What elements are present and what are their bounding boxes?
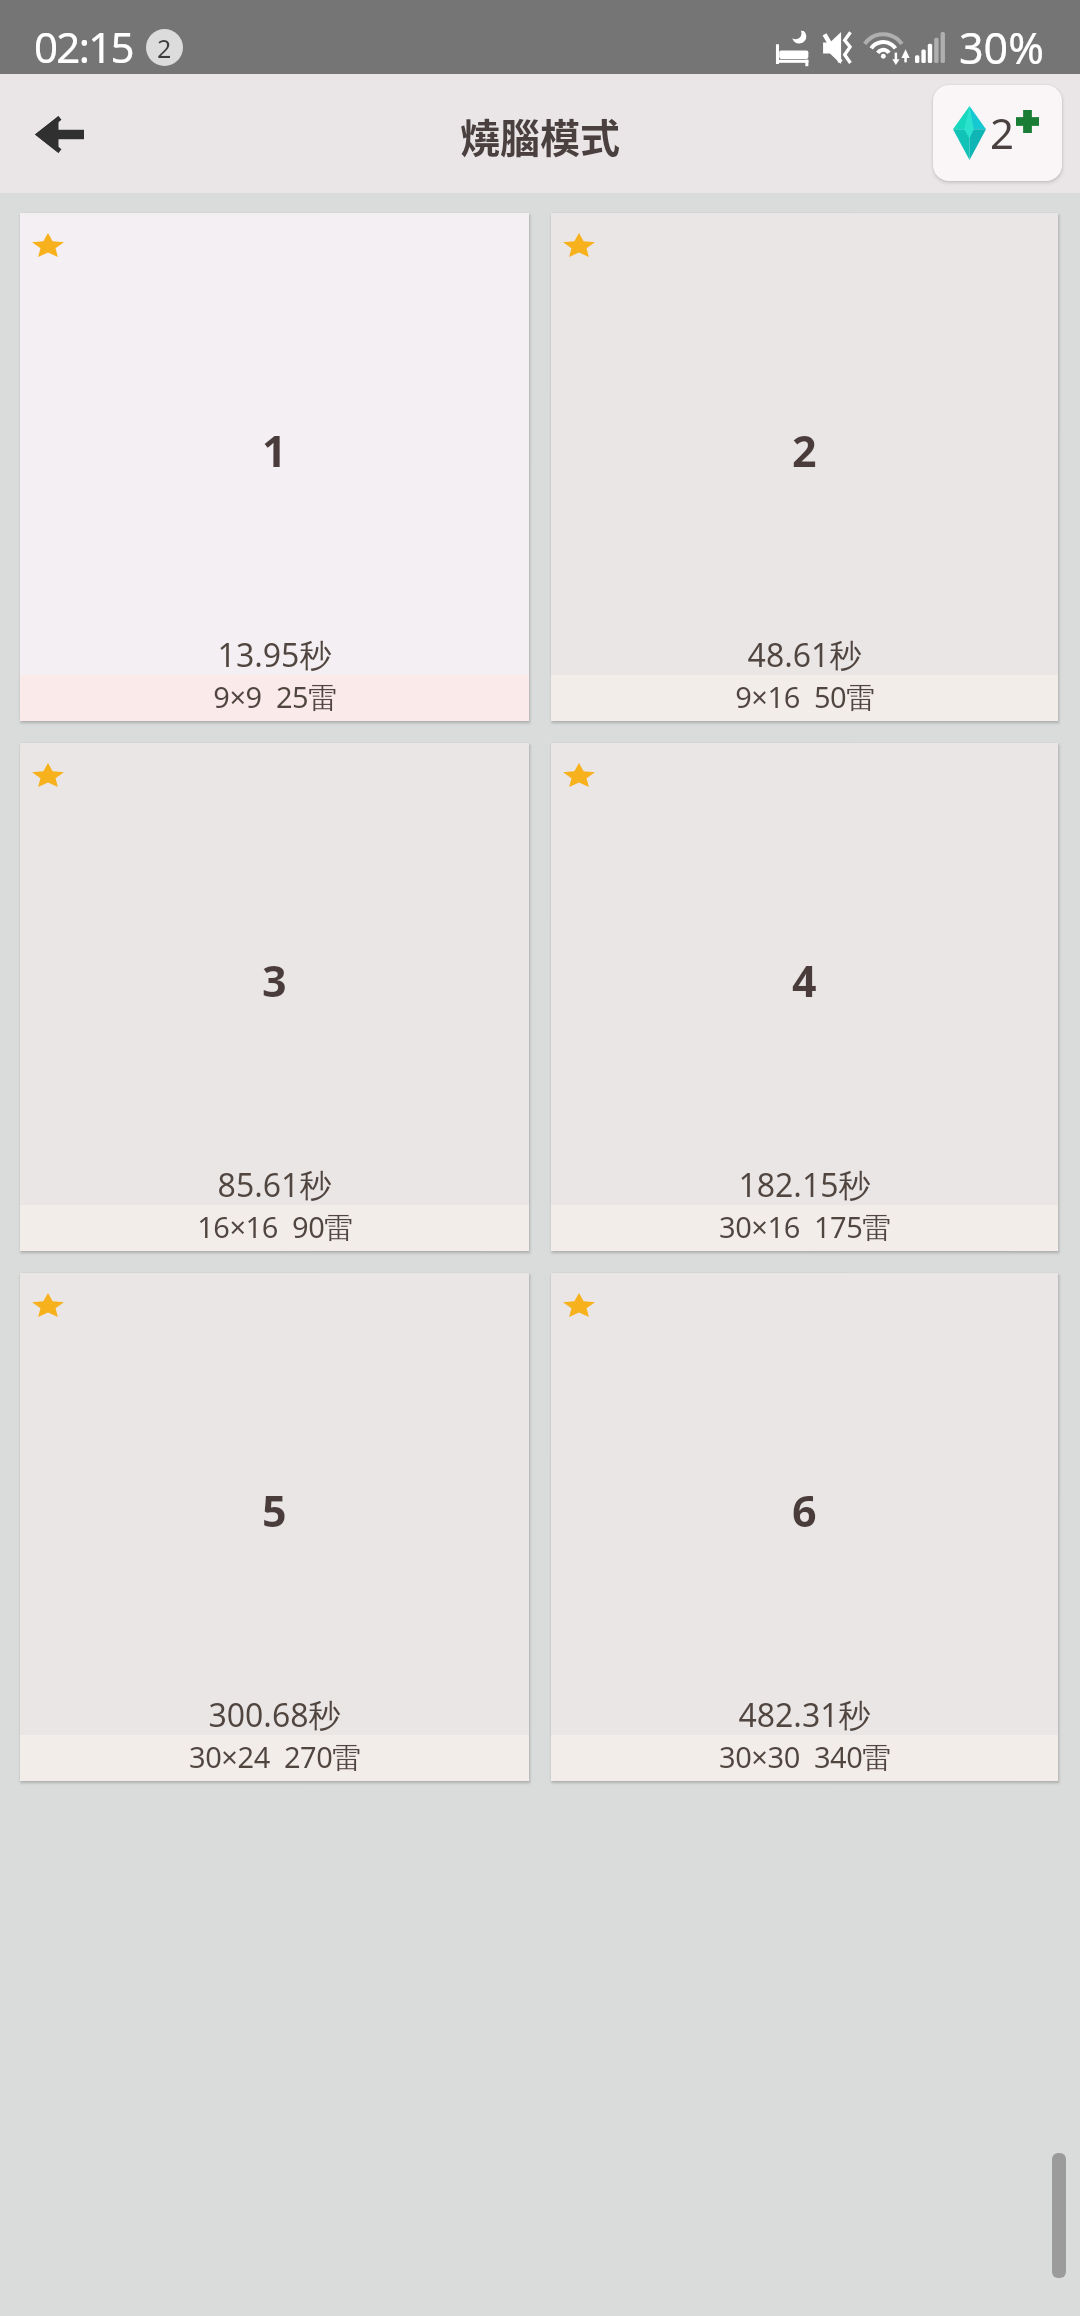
staticText: 2 xyxy=(792,421,817,480)
staticText: 13.95秒 xyxy=(20,633,529,677)
staticText: 182.15秒 xyxy=(551,1163,1058,1207)
button[interactable]: Gems 2, buy more xyxy=(933,85,1062,181)
staticText: 30% xyxy=(959,18,1044,77)
button[interactable]: 2 xyxy=(551,213,1058,721)
staticText: 9×9 25雷 xyxy=(213,677,337,717)
staticText: 9×16 50雷 xyxy=(735,677,875,717)
staticText: 16×16 90雷 xyxy=(197,1207,353,1247)
button[interactable]: 4 xyxy=(551,743,1058,1251)
button[interactable]: 5 xyxy=(20,1273,529,1781)
staticText: 3 xyxy=(262,951,287,1010)
button[interactable]: 3 xyxy=(20,743,529,1251)
staticText: 482.31秒 xyxy=(551,1693,1058,1737)
staticText: 02:15 xyxy=(34,18,133,75)
staticText: 2 xyxy=(157,31,172,65)
staticText: 6 xyxy=(792,1481,817,1540)
staticText: 5 xyxy=(262,1481,287,1540)
button[interactable]: Back xyxy=(14,89,104,179)
staticText: 30×30 340雷 xyxy=(719,1737,891,1777)
staticText: 1 xyxy=(262,421,287,480)
staticText: 4 xyxy=(792,951,817,1010)
button[interactable]: 6 xyxy=(551,1273,1058,1781)
staticText: 85.61秒 xyxy=(20,1163,529,1207)
staticText: 300.68秒 xyxy=(20,1693,529,1737)
staticText: 48.61秒 xyxy=(551,633,1058,677)
staticText: 燒腦模式 xyxy=(460,107,620,165)
staticText: 2 xyxy=(990,104,1015,161)
staticText: 30×24 270雷 xyxy=(189,1737,361,1777)
staticText: 30×16 175雷 xyxy=(719,1207,891,1247)
button[interactable]: 1 xyxy=(20,213,529,721)
